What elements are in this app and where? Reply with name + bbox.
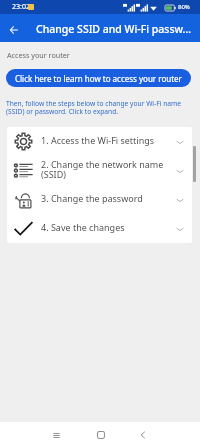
button[interactable]: 3. Change the password (7, 185, 192, 214)
button[interactable]: Click here to learn how to access your r… (6, 69, 191, 87)
staticText: 4. Save the changes (41, 221, 174, 233)
button[interactable]: 2. Change the network name (SSID) (7, 156, 192, 185)
button[interactable]: 4. Save the changes (7, 214, 192, 243)
staticText: 23:02 (12, 2, 30, 12)
staticText: Access your router (7, 50, 70, 60)
staticText: 2. Change the network name (SSID) (41, 158, 174, 180)
button[interactable]: Recents (46, 425, 66, 445)
button[interactable]: Back (133, 425, 153, 445)
staticText: 1. Access the Wi-Fi settings (41, 134, 174, 146)
staticText: Change SSID and Wi-Fi passw… (36, 22, 192, 36)
staticText: 3. Change the password (41, 192, 174, 204)
staticText: Click here to learn how to access your r… (15, 73, 182, 84)
button[interactable]: Back (0, 16, 28, 44)
staticText: Then, follow the steps below to change y… (6, 99, 188, 116)
staticText: 80% (178, 3, 190, 11)
button[interactable]: 1. Access the Wi-Fi settings (7, 127, 192, 156)
button[interactable]: Home (91, 425, 111, 445)
